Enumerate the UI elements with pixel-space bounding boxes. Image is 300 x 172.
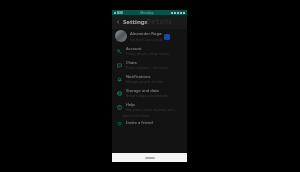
staticText: Account [126, 46, 142, 51]
button[interactable]: Help [112, 100, 187, 114]
staticText: Message, group & call tones [126, 80, 164, 84]
staticText: Chats [126, 60, 137, 65]
staticText: Theme, wallpapers, chat history [126, 66, 168, 70]
button[interactable]: Alexander Ragan [112, 29, 187, 43]
button[interactable]: QR code [162, 32, 171, 41]
staticText: Settings [123, 18, 148, 26]
staticText: Details [146, 16, 172, 26]
staticText: Notifications [126, 74, 151, 79]
staticText: 8:30 [117, 11, 123, 15]
staticText: Help centre, contact us, privacy policy [126, 108, 176, 112]
staticText: Also from Facebook [123, 114, 149, 118]
staticText: Network usage, auto-download [126, 94, 168, 98]
staticText: Invite a friend [126, 120, 153, 125]
button[interactable]: Account [112, 44, 187, 58]
button[interactable]: Notifications [112, 72, 187, 86]
button[interactable]: Invite a friend [112, 118, 187, 127]
button[interactable]: Storage and data [112, 86, 187, 100]
staticText: Storage and data [126, 88, 159, 93]
staticText: Hey there! I am using WhatsApp [130, 38, 162, 42]
staticText: WhatsApp [140, 11, 154, 15]
staticText: Privacy, security, change number [126, 52, 170, 56]
staticText: Help [126, 102, 135, 107]
staticText: Alexander Ragan [130, 31, 162, 37]
button[interactable]: Chats [112, 58, 187, 72]
button[interactable]: Back [114, 18, 122, 26]
